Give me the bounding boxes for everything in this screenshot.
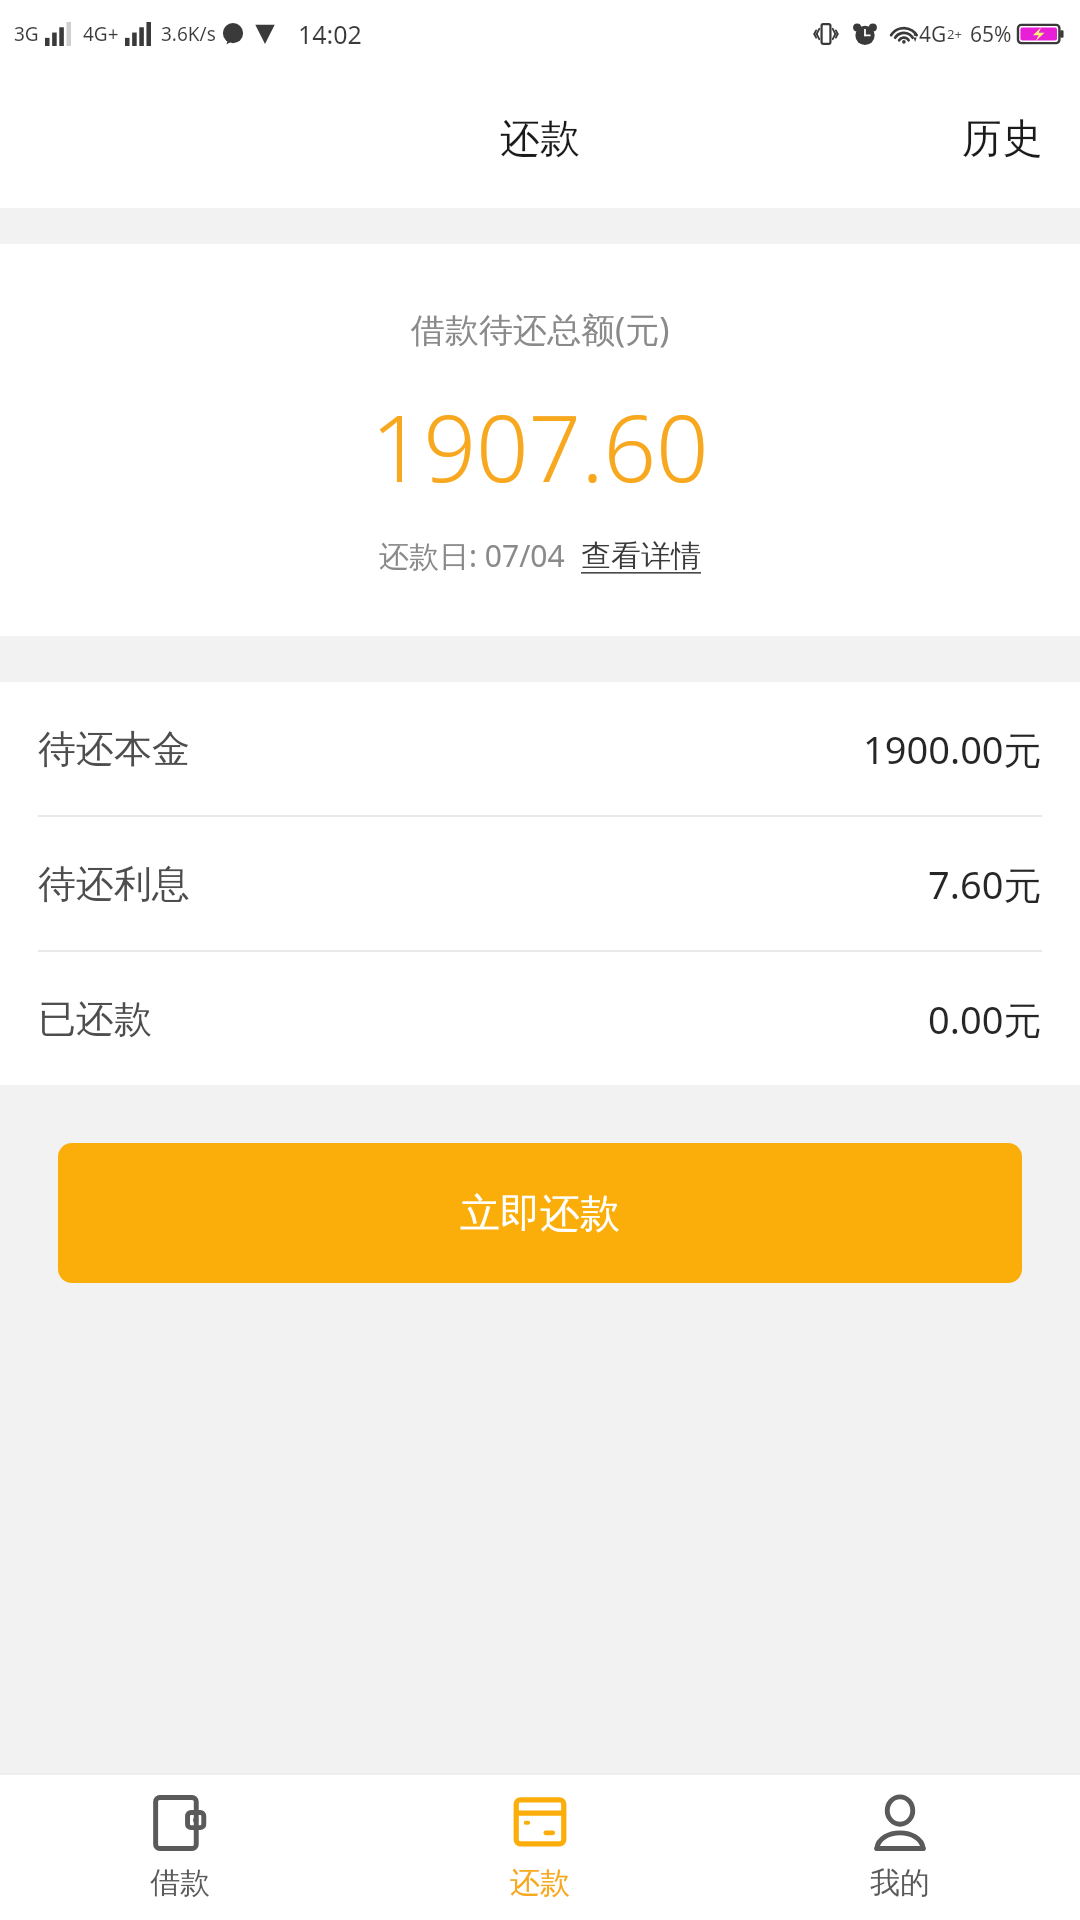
button[interactable]: 立即还款 — [58, 1143, 1022, 1283]
staticText: 65% — [970, 20, 1012, 49]
button[interactable]: 待还本金 — [0, 682, 1080, 815]
staticText: 还款 — [510, 1864, 570, 1902]
button[interactable]: 历史 — [924, 91, 1080, 185]
staticText: 查看详情 — [581, 537, 701, 575]
button[interactable]: 查看详情 — [581, 537, 701, 575]
staticText: 4G — [919, 20, 947, 49]
staticText: 借款待还总额(元) — [411, 306, 670, 352]
staticText: 3.6K/s — [161, 21, 216, 47]
staticText: 还款日: 07/04 — [379, 535, 565, 576]
staticText: 0.00元 — [928, 993, 1042, 1045]
other: 我的 — [871, 1794, 929, 1852]
staticText: 借款 — [150, 1864, 210, 1902]
staticText: 待还利息 — [38, 860, 190, 908]
staticText: 立即还款 — [460, 1188, 620, 1238]
button[interactable]: 我的 — [720, 1775, 1080, 1920]
staticText: 3G — [14, 21, 39, 47]
staticText: 我的 — [870, 1864, 930, 1902]
staticText: 14:02 — [298, 17, 362, 51]
staticText: 待还本金 — [38, 725, 190, 773]
button[interactable]: 还款 — [360, 1775, 720, 1920]
other: 还款 — [511, 1794, 569, 1852]
staticText: 1907.60 — [371, 384, 709, 509]
staticText: 7.60元 — [928, 858, 1042, 910]
staticText: 1900.00元 — [863, 723, 1042, 775]
staticText: 2+ — [947, 25, 962, 43]
staticText: 4G+ — [83, 21, 119, 47]
button[interactable]: 待还利息 — [0, 817, 1080, 950]
staticText: 历史 — [962, 113, 1042, 163]
button[interactable]: 已还款 — [0, 952, 1080, 1085]
staticText: 已还款 — [38, 995, 152, 1043]
other: 借款 — [151, 1794, 209, 1852]
staticText: 还款 — [500, 113, 580, 163]
button[interactable]: 借款 — [0, 1775, 360, 1920]
